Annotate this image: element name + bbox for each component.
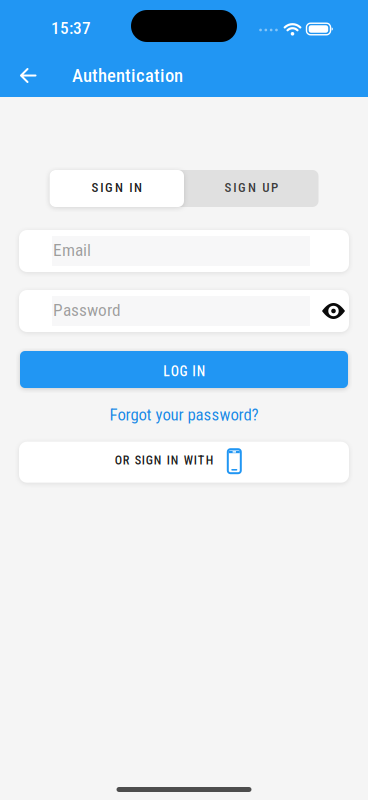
staticText: H [206,453,214,467]
staticText: Email [53,240,91,260]
staticText: O [115,453,122,467]
staticText: S [224,180,231,195]
staticText: S [91,180,98,195]
staticText: N [248,180,256,195]
staticText: P [271,180,278,195]
staticText: G [146,453,153,467]
staticText: I [129,180,132,195]
staticText: N [197,363,205,380]
button[interactable]: L [20,351,348,388]
button[interactable]: S [184,170,318,207]
staticText: U [262,180,269,195]
staticText: G [238,180,246,195]
button[interactable]: O [19,442,349,483]
staticText: I [192,363,196,380]
staticText: Forgot your password? [109,405,258,425]
staticText: G [105,180,113,195]
button[interactable]: Back [0,68,56,83]
staticText: T [198,453,205,467]
staticText: I [100,180,103,195]
staticText: I [142,453,145,467]
staticText: N [154,453,162,467]
button[interactable]: Show password [321,302,349,319]
staticText: L [163,363,170,380]
button[interactable]: Forgot your password? [109,405,258,425]
staticText: N [171,453,179,467]
staticText: N [134,180,142,195]
staticText: S [135,453,141,467]
staticText: I [167,453,170,467]
staticText: W [184,453,193,467]
staticText: Password [53,300,121,320]
staticText: G [180,363,188,380]
staticText: N [115,180,123,195]
staticText: Authentication [72,65,183,86]
button[interactable]: S [49,170,184,207]
staticText: 15:37 [51,18,91,38]
staticText: I [194,453,197,467]
staticText: R [123,453,130,467]
staticText: O [171,363,179,380]
staticText: I [233,180,236,195]
